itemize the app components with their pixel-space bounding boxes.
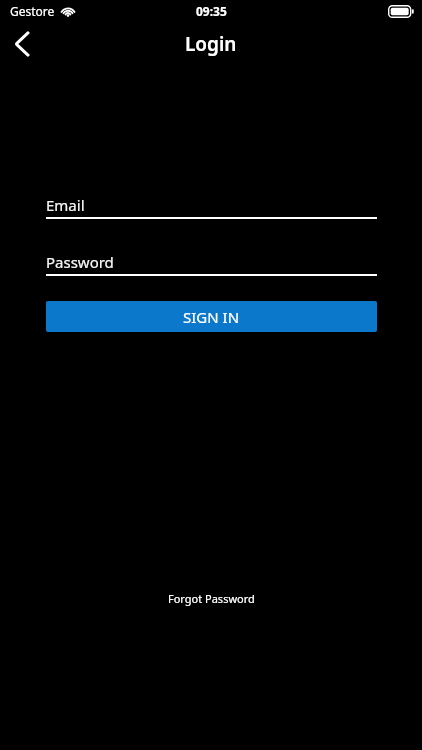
button[interactable]: Forgot Password	[160, 588, 263, 609]
staticText: SIGN IN	[183, 307, 240, 327]
staticText: Gestore	[10, 3, 55, 19]
staticText: Login	[185, 31, 237, 57]
button[interactable]: Email	[46, 182, 377, 219]
staticText: 09:35	[196, 3, 227, 19]
staticText: Password	[46, 252, 114, 272]
button[interactable]: Back	[0, 22, 44, 65]
staticText: Email	[46, 195, 85, 215]
staticText: Forgot Password	[168, 591, 255, 606]
button[interactable]: SIGN IN	[46, 301, 377, 332]
button[interactable]: Password	[46, 239, 377, 276]
